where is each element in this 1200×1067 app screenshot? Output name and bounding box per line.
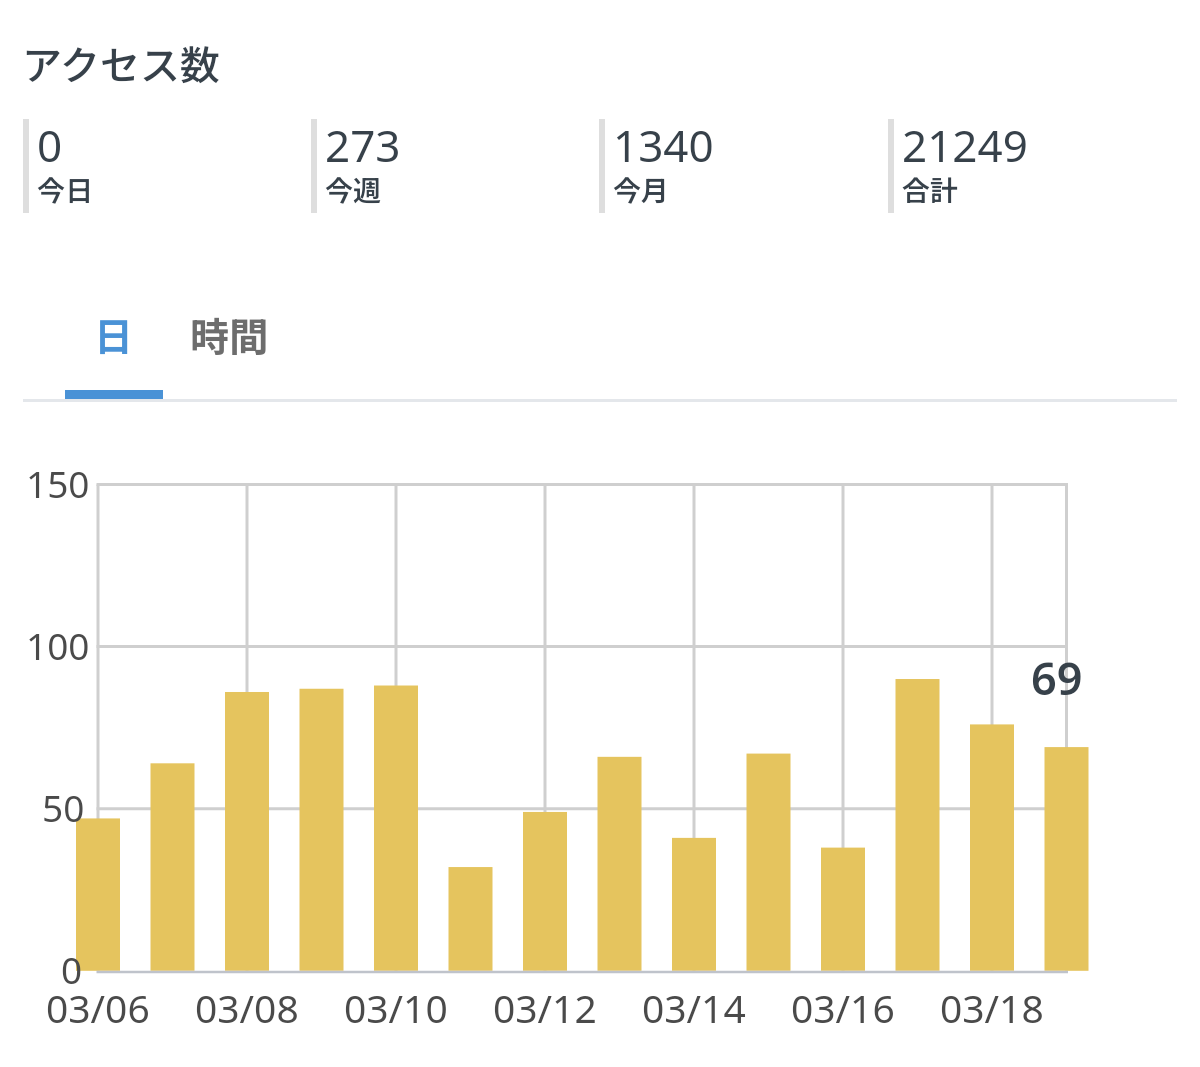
staticText: 今日: [37, 169, 94, 210]
staticText: 今月: [613, 169, 670, 210]
button[interactable]: 273: [311, 119, 599, 214]
button[interactable]: 時間: [163, 291, 296, 402]
staticText: 時間: [190, 306, 269, 362]
staticText: アクセス数: [22, 34, 220, 92]
staticText: 日: [94, 306, 134, 362]
button[interactable]: Daily access bar chart: [0, 440, 1200, 1067]
button[interactable]: 21249: [888, 119, 1177, 214]
staticText: 273: [325, 115, 401, 175]
button[interactable]: 0: [23, 119, 311, 214]
staticText: 0: [37, 115, 63, 175]
button[interactable]: 1340: [599, 119, 888, 214]
staticText: 1340: [613, 115, 714, 175]
staticText: 21249: [902, 115, 1028, 175]
staticText: 今週: [325, 169, 382, 210]
staticText: 合計: [902, 169, 959, 210]
button[interactable]: 日: [65, 291, 163, 402]
